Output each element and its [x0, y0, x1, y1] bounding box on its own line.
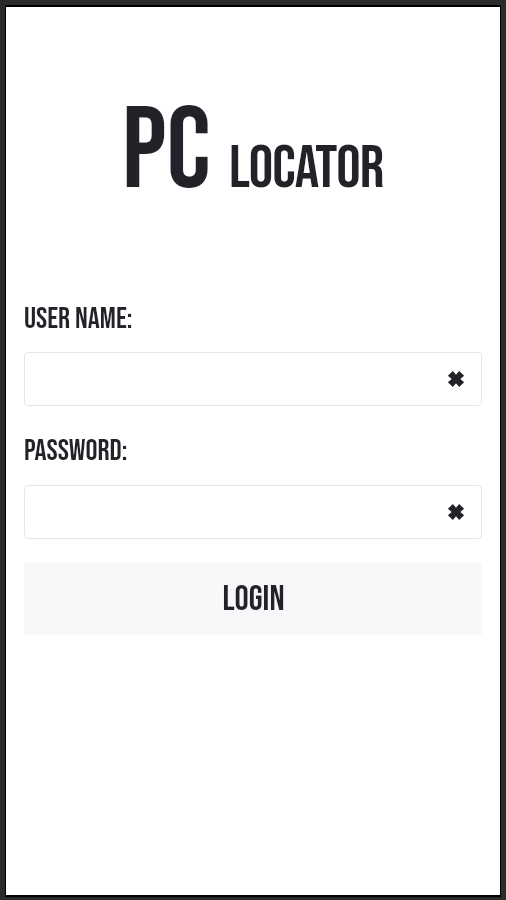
staticText: PC [122, 83, 211, 221]
staticText: USER NAME: [24, 301, 133, 337]
button[interactable]: Clear user name [442, 365, 470, 393]
button[interactable]: Clear user name [24, 352, 482, 406]
button[interactable]: Clear password [442, 498, 470, 526]
staticText: LOCATOR [229, 132, 384, 205]
staticText: PASSWORD: [24, 433, 128, 469]
button[interactable]: LOGIN [24, 563, 482, 635]
button[interactable]: Clear password [24, 485, 482, 539]
staticText: LOGIN [222, 578, 285, 621]
